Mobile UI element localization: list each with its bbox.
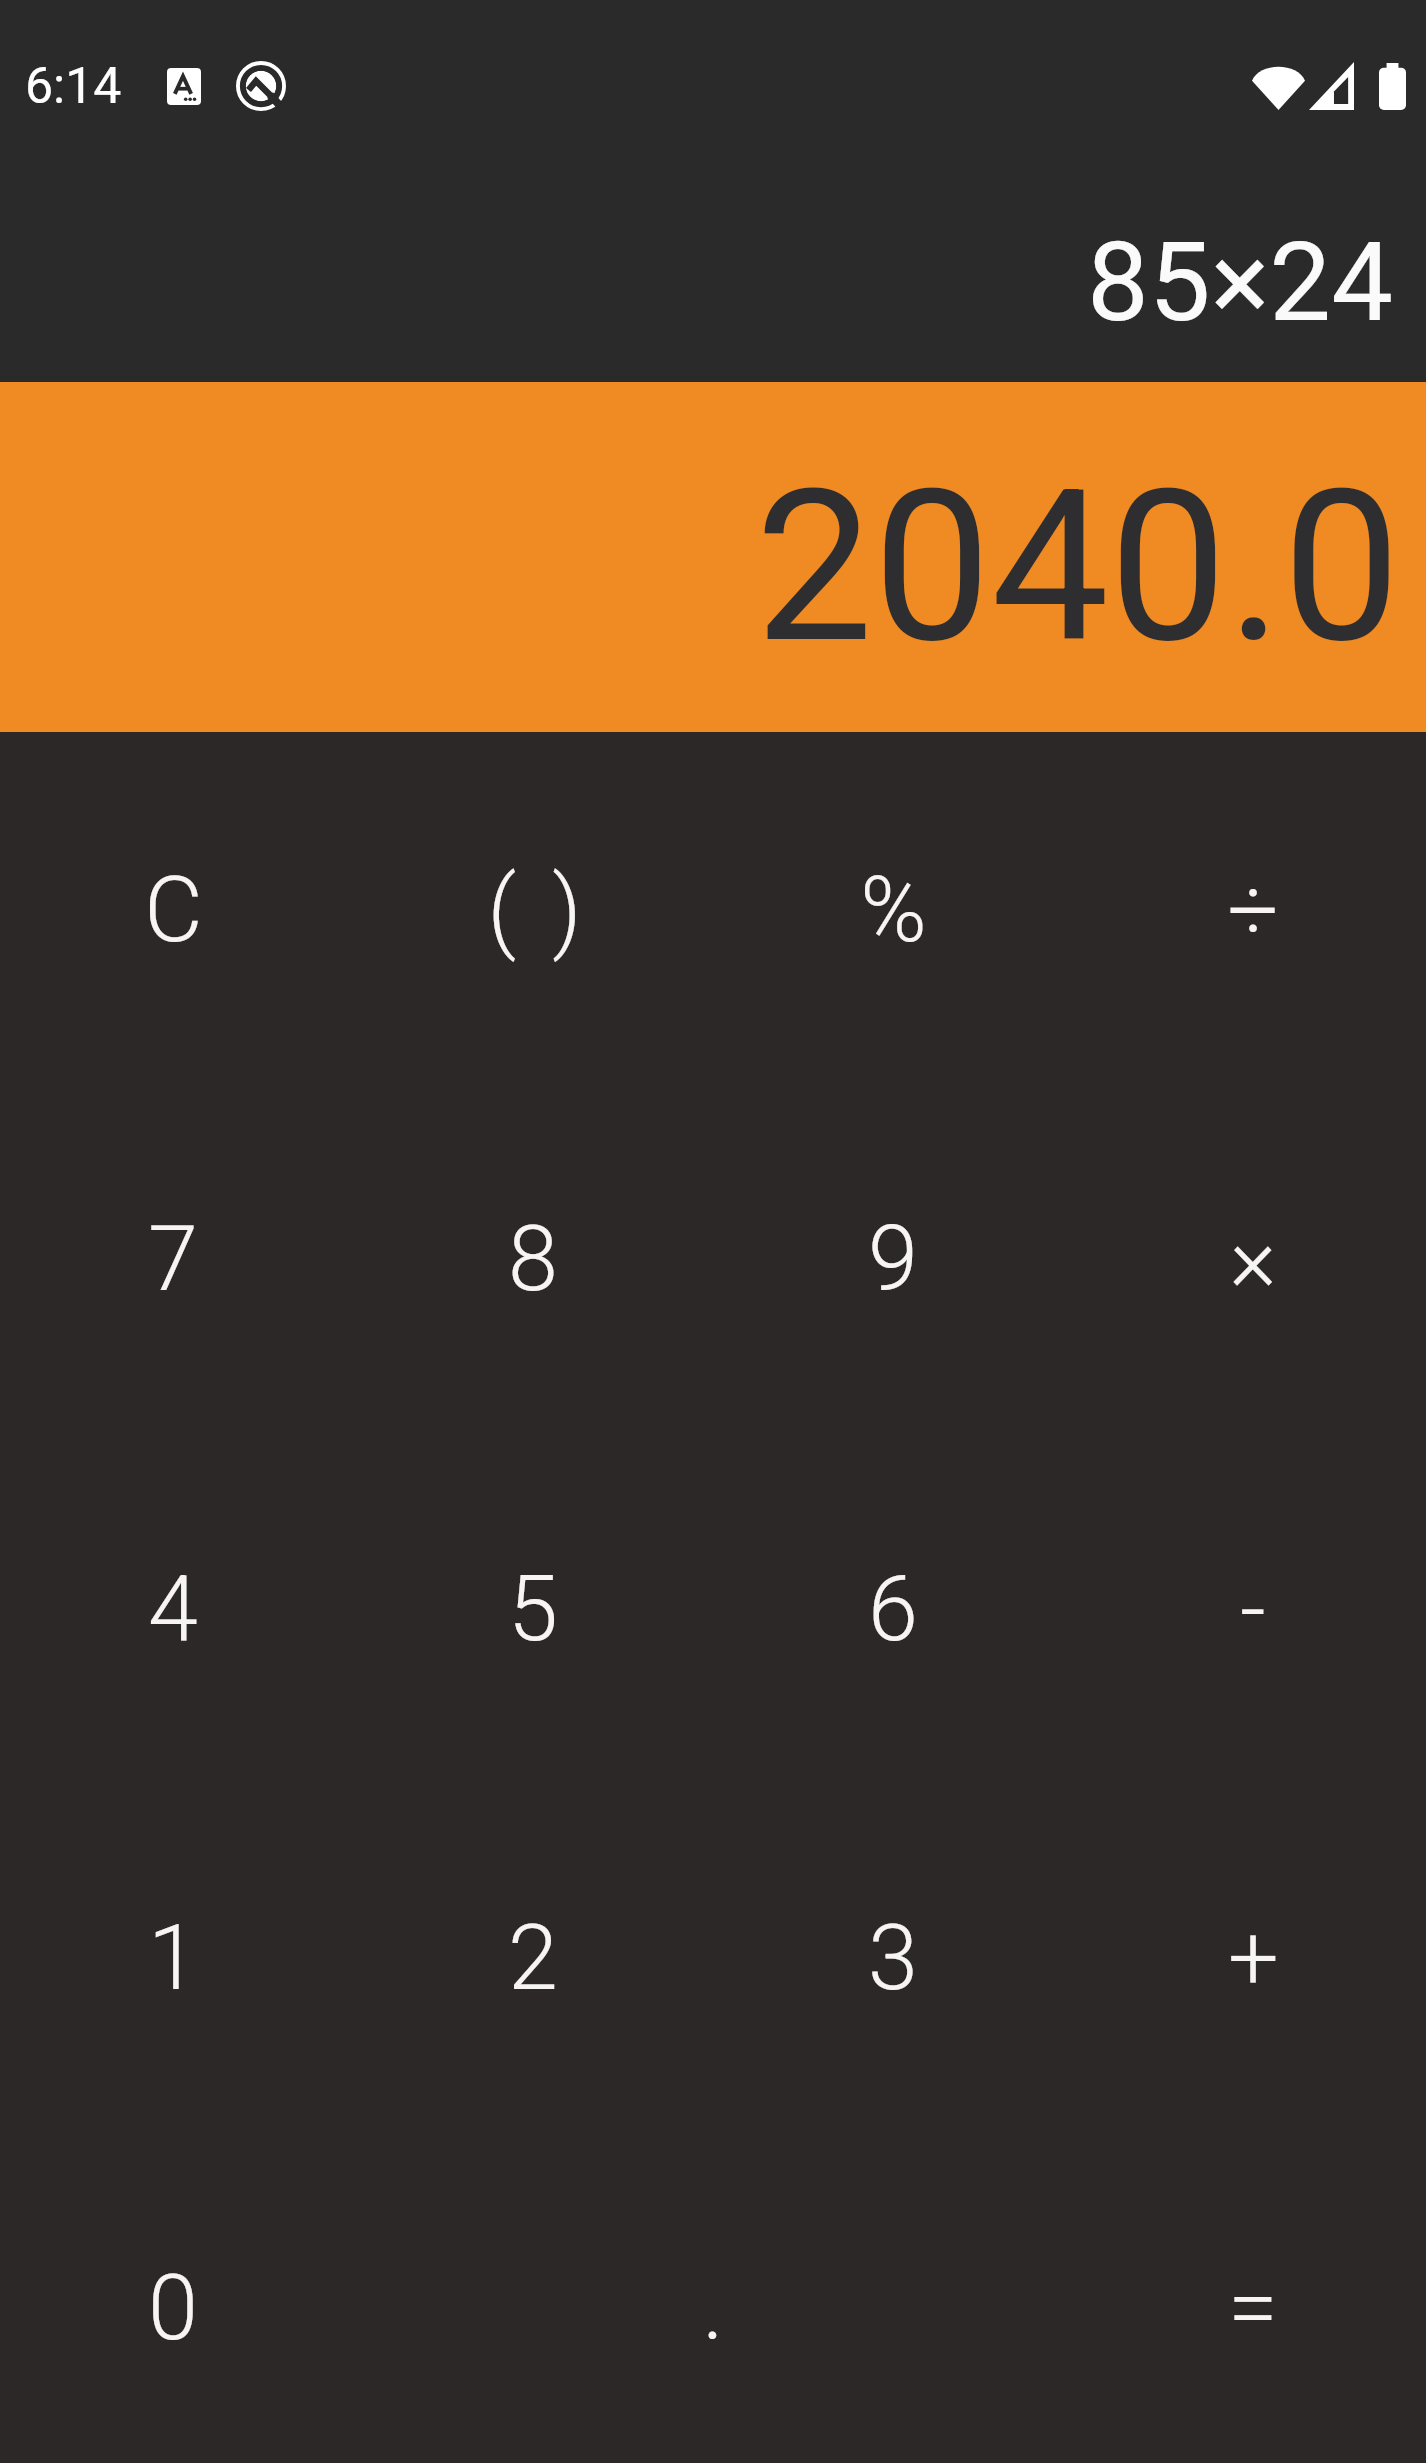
staticText: 2 bbox=[508, 1906, 558, 2011]
button[interactable]: × bbox=[1073, 1084, 1426, 1434]
staticText: 7 bbox=[148, 1207, 198, 1312]
staticText: - bbox=[1240, 1557, 1266, 1662]
staticText: = bbox=[1228, 2256, 1278, 2361]
button[interactable]: + bbox=[1073, 1783, 1426, 2133]
staticText: × bbox=[1229, 1207, 1277, 1312]
other: Battery bbox=[1379, 63, 1406, 110]
other: Android version bbox=[236, 61, 286, 111]
staticText: 6 bbox=[868, 1557, 918, 1662]
staticText: + bbox=[1228, 1906, 1279, 2011]
staticText: 2040.0 bbox=[755, 444, 1401, 690]
button[interactable]: 4 bbox=[0, 1434, 353, 1784]
button[interactable]: ( ) bbox=[353, 735, 713, 1085]
staticText: % bbox=[860, 858, 927, 963]
staticText: 5 bbox=[508, 1557, 558, 1662]
button[interactable]: 1 bbox=[0, 1783, 353, 2133]
staticText: ÷ bbox=[1227, 858, 1279, 963]
button[interactable]: 2040.0 bbox=[0, 382, 1426, 732]
staticText: . bbox=[702, 2256, 724, 2361]
staticText: 6:14 bbox=[25, 57, 122, 116]
other: Mobile signal bbox=[1309, 62, 1354, 110]
button[interactable]: % bbox=[713, 735, 1073, 1085]
button[interactable]: 2 bbox=[353, 1783, 713, 2133]
button[interactable]: 5 bbox=[353, 1434, 713, 1784]
button[interactable]: ÷ bbox=[1073, 735, 1426, 1085]
button[interactable]: C bbox=[0, 735, 353, 1085]
staticText: 1 bbox=[148, 1906, 198, 2011]
staticText: 8 bbox=[508, 1207, 558, 1312]
staticText: 3 bbox=[868, 1906, 918, 2011]
button[interactable]: 6 bbox=[713, 1434, 1073, 1784]
staticText: 85×24 bbox=[1087, 218, 1393, 347]
staticText: C bbox=[144, 858, 203, 963]
button[interactable]: 9 bbox=[713, 1084, 1073, 1434]
button[interactable]: = bbox=[1073, 2133, 1426, 2463]
other: Live caption bbox=[167, 68, 201, 105]
button[interactable]: 85×24 bbox=[0, 172, 1426, 382]
staticText: 4 bbox=[148, 1557, 198, 1662]
button[interactable]: - bbox=[1073, 1434, 1426, 1784]
staticText: ( ) bbox=[487, 858, 589, 963]
button[interactable]: 7 bbox=[0, 1084, 353, 1434]
other: Wi-Fi bbox=[1252, 62, 1305, 110]
staticText: 9 bbox=[868, 1207, 918, 1312]
button[interactable]: 8 bbox=[353, 1084, 713, 1434]
button[interactable]: 3 bbox=[713, 1783, 1073, 2133]
button[interactable]: 0 bbox=[0, 2133, 353, 2463]
staticText: 0 bbox=[148, 2256, 198, 2361]
